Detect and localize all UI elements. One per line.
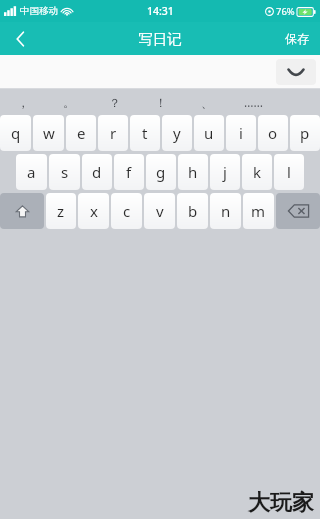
button[interactable]: ？	[92, 89, 138, 115]
staticText: d	[92, 162, 102, 182]
staticText: j	[223, 162, 227, 182]
button[interactable]: Back	[0, 22, 40, 55]
button[interactable]: ，	[0, 89, 46, 115]
button[interactable]: h	[178, 154, 208, 190]
staticText: y	[173, 123, 181, 143]
button[interactable]: m	[243, 193, 274, 229]
button[interactable]: g	[146, 154, 176, 190]
button[interactable]: d	[82, 154, 112, 190]
button[interactable]: b	[177, 193, 208, 229]
button[interactable]: v	[144, 193, 175, 229]
button[interactable]: t	[130, 115, 160, 151]
staticText: n	[221, 201, 231, 221]
staticText: z	[57, 201, 65, 221]
button[interactable]: s	[49, 154, 80, 190]
button[interactable]: k	[242, 154, 272, 190]
button[interactable]: z	[46, 193, 76, 229]
button[interactable]: 保存	[274, 22, 320, 55]
staticText: v	[156, 201, 164, 221]
staticText: e	[77, 123, 86, 143]
staticText: i	[239, 123, 243, 143]
staticText: 写日记	[138, 30, 182, 48]
staticText: q	[11, 123, 21, 143]
staticText: x	[90, 201, 98, 221]
staticText: 中国移动	[20, 5, 58, 17]
button[interactable]: u	[194, 115, 224, 151]
staticText: s	[61, 162, 69, 182]
staticText: t	[142, 123, 148, 143]
staticText: p	[300, 123, 310, 143]
staticText: ，	[17, 95, 29, 110]
staticText: 大玩家	[248, 489, 314, 517]
staticText: m	[251, 201, 266, 221]
staticText: 保存	[285, 31, 309, 46]
staticText: l	[287, 162, 291, 182]
button[interactable]: n	[210, 193, 241, 229]
staticText: c	[123, 201, 131, 221]
staticText: f	[126, 162, 132, 182]
staticText: g	[156, 162, 166, 182]
staticText: a	[27, 162, 36, 182]
button[interactable]: Shift	[0, 193, 44, 229]
staticText: k	[253, 162, 262, 182]
staticText: 14:31	[147, 4, 174, 18]
staticText: 、	[201, 95, 213, 110]
button[interactable]: 。	[46, 89, 92, 115]
button[interactable]: p	[290, 115, 320, 151]
button[interactable]: 、	[184, 89, 230, 115]
button[interactable]: w	[33, 115, 64, 151]
staticText: b	[188, 201, 198, 221]
button[interactable]: e	[66, 115, 96, 151]
button[interactable]: ！	[138, 89, 184, 115]
staticText: u	[204, 123, 214, 143]
staticText: 。	[63, 95, 75, 110]
button[interactable]: q	[0, 115, 31, 151]
button[interactable]: c	[111, 193, 142, 229]
button[interactable]: y	[162, 115, 192, 151]
button[interactable]: r	[98, 115, 128, 151]
button[interactable]: x	[78, 193, 109, 229]
staticText: h	[188, 162, 198, 182]
staticText: ！	[155, 95, 167, 110]
button[interactable]: a	[16, 154, 47, 190]
button[interactable]: o	[258, 115, 288, 151]
staticText: ……	[244, 94, 263, 110]
staticText: w	[43, 123, 55, 143]
staticText: r	[110, 123, 117, 143]
button[interactable]: Hide keyboard	[276, 59, 316, 85]
button[interactable]: l	[274, 154, 304, 190]
staticText: 76%	[276, 5, 295, 18]
button[interactable]: Backspace	[276, 193, 320, 229]
button[interactable]: j	[210, 154, 240, 190]
button[interactable]: i	[226, 115, 256, 151]
staticText: o	[268, 123, 278, 143]
button[interactable]: ……	[230, 89, 276, 115]
staticText: ？	[109, 95, 121, 110]
button[interactable]: f	[114, 154, 144, 190]
